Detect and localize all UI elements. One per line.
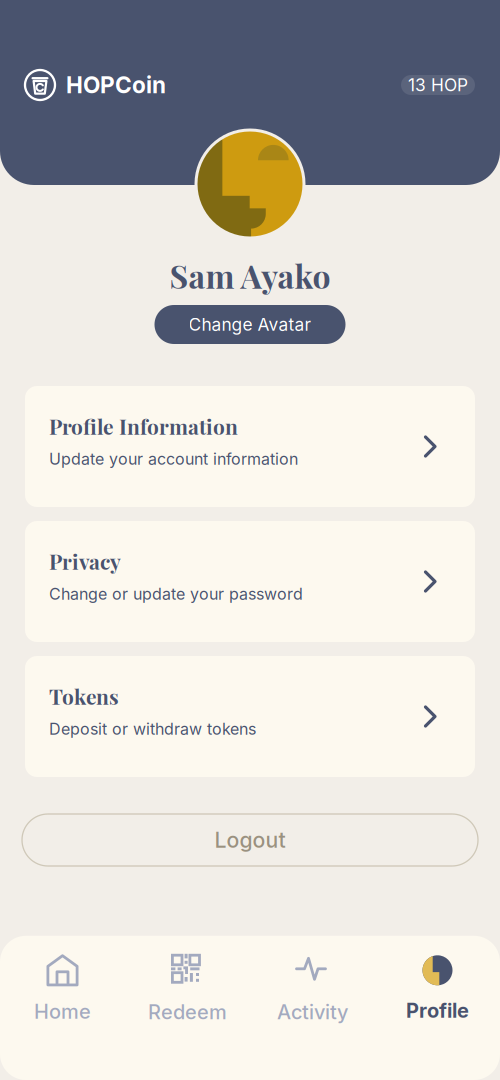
staticText: Activity <box>277 1000 348 1024</box>
staticText: Logout <box>214 827 285 853</box>
staticText: Change or update your password <box>49 584 303 604</box>
staticText: Update your account information <box>49 449 298 469</box>
staticText: Change Avatar <box>188 314 311 335</box>
button[interactable]: Change Avatar <box>154 305 345 344</box>
button[interactable]: Logout <box>22 814 478 866</box>
staticText: Redeem <box>148 1000 227 1024</box>
button[interactable]: Profile <box>375 955 500 1022</box>
staticText: Privacy <box>49 547 121 575</box>
button[interactable]: Activity <box>250 954 375 1024</box>
staticText: Profile <box>406 998 469 1022</box>
button[interactable]: Privacy <box>25 521 475 642</box>
staticText: Sam Ayako <box>169 254 330 297</box>
staticText: HOPCoin <box>66 71 166 99</box>
staticText: Home <box>34 999 91 1023</box>
staticText: Tokens <box>49 682 119 710</box>
staticText: Deposit or withdraw tokens <box>49 719 256 739</box>
staticText: Profile Information <box>49 412 238 440</box>
button[interactable]: Redeem <box>125 954 250 1024</box>
button[interactable]: Home <box>0 954 125 1023</box>
button[interactable]: Profile Information <box>25 386 475 507</box>
staticText: 13 HOP <box>408 74 468 95</box>
button[interactable]: Tokens <box>25 656 475 777</box>
